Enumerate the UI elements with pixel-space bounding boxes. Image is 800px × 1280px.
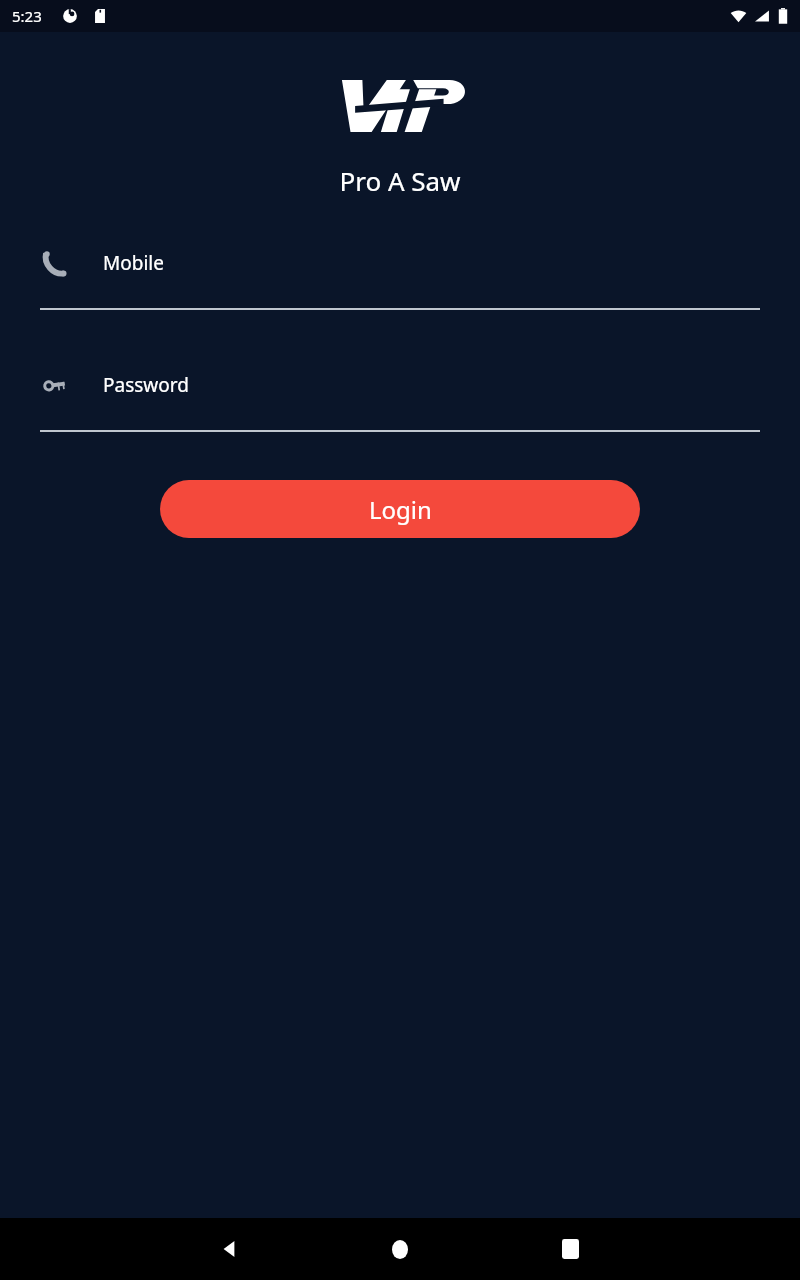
staticText: Mobile (103, 250, 164, 276)
button[interactable]: Recent apps (545, 1224, 595, 1274)
staticText: Login (369, 493, 432, 526)
button[interactable]: Mobile (40, 240, 760, 310)
button[interactable]: Back (205, 1224, 255, 1274)
button[interactable]: Password (40, 362, 760, 432)
staticText: Pro A Saw (0, 163, 800, 198)
button[interactable]: Login (160, 480, 640, 538)
staticText: Password (103, 372, 189, 398)
staticText: 5:23 (12, 6, 42, 26)
button[interactable]: Home (375, 1224, 425, 1274)
